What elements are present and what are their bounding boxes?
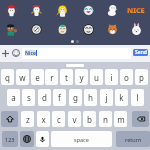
staticText: b <box>87 114 92 125</box>
staticText: Send <box>135 49 147 56</box>
button[interactable]: Sticker 1 <box>2 1 20 19</box>
button[interactable]: Add <box>0 46 10 60</box>
button[interactable]: o <box>120 69 133 85</box>
button[interactable]: Emoji <box>11 46 21 60</box>
button[interactable]: r <box>45 69 58 85</box>
button[interactable]: Sticker 5 <box>103 1 121 19</box>
button[interactable]: x <box>37 111 50 127</box>
staticText: n <box>103 114 108 125</box>
button[interactable]: Sticker 10 <box>79 20 97 38</box>
button[interactable]: v <box>68 111 81 127</box>
staticText: h <box>88 92 93 103</box>
button[interactable]: Switch keyboard <box>20 131 34 147</box>
button[interactable]: z <box>21 111 34 127</box>
staticText: g <box>73 92 78 103</box>
staticText: u <box>94 72 99 83</box>
button[interactable]: q <box>1 69 14 85</box>
staticText: 123 <box>5 136 15 143</box>
button[interactable]: Nice <box>25 50 36 56</box>
staticText: j <box>105 92 108 103</box>
button[interactable]: f <box>53 89 66 106</box>
button[interactable]: Sticker 8 <box>27 20 45 38</box>
staticText: w <box>19 72 26 83</box>
staticText: o <box>124 72 129 83</box>
staticText: x <box>41 114 46 125</box>
staticText: c <box>57 114 61 125</box>
staticText: d <box>42 92 47 103</box>
button[interactable]: y <box>75 69 88 85</box>
button[interactable]: Sticker 6 <box>127 1 145 19</box>
staticText: m <box>117 114 125 125</box>
button[interactable]: a <box>7 89 20 106</box>
button[interactable]: c <box>52 111 65 127</box>
staticText: return <box>125 136 142 143</box>
button[interactable]: Shift <box>1 111 18 127</box>
button[interactable]: h <box>84 89 97 106</box>
staticText: a <box>11 92 16 103</box>
button[interactable]: Resize keyboard <box>66 64 84 67</box>
staticText: p <box>139 72 144 83</box>
staticText: e <box>35 72 40 83</box>
button[interactable]: Backspace <box>132 111 149 127</box>
staticText: l <box>136 92 139 103</box>
button[interactable]: return <box>116 131 150 147</box>
staticText: v <box>72 114 77 125</box>
button[interactable]: k <box>115 89 128 106</box>
button[interactable] <box>22 48 131 59</box>
staticText: NICE <box>127 5 145 15</box>
button[interactable]: i <box>105 69 118 85</box>
button[interactable]: Send <box>133 49 148 56</box>
button[interactable]: b <box>83 111 96 127</box>
staticText: i <box>110 72 113 83</box>
button[interactable]: Sticker 11 <box>103 20 121 38</box>
staticText: y <box>79 72 84 83</box>
button[interactable]: p <box>135 69 148 85</box>
button[interactable]: w <box>16 69 29 85</box>
button[interactable]: d <box>38 89 51 106</box>
staticText: f <box>58 92 61 103</box>
button[interactable]: n <box>99 111 112 127</box>
staticText: Nice <box>25 50 36 56</box>
button[interactable]: m <box>114 111 127 127</box>
button[interactable]: j <box>100 89 113 106</box>
button[interactable]: l <box>131 89 144 106</box>
button[interactable]: Sticker 7 <box>2 20 20 38</box>
button[interactable]: g <box>69 89 82 106</box>
staticText: q <box>5 72 10 83</box>
button[interactable]: Sticker 3 <box>53 1 71 19</box>
button[interactable]: 123 <box>2 131 18 147</box>
button[interactable]: Sticker 9 <box>53 20 71 38</box>
button[interactable]: s <box>22 89 35 106</box>
button[interactable]: t <box>60 69 73 85</box>
button[interactable]: Sticker 12 <box>127 20 145 38</box>
button[interactable]: e <box>31 69 44 85</box>
staticText: z <box>26 114 30 125</box>
staticText: r <box>50 72 54 83</box>
button[interactable]: u <box>90 69 103 85</box>
button[interactable]: Dictation <box>36 131 49 147</box>
button[interactable]: Sticker 4 <box>79 1 97 19</box>
button[interactable]: space <box>51 131 112 147</box>
staticText: k <box>119 92 124 103</box>
staticText: space <box>74 136 89 143</box>
staticText: s <box>27 92 31 103</box>
staticText: t <box>65 72 68 83</box>
button[interactable]: Sticker 2 <box>27 1 45 19</box>
